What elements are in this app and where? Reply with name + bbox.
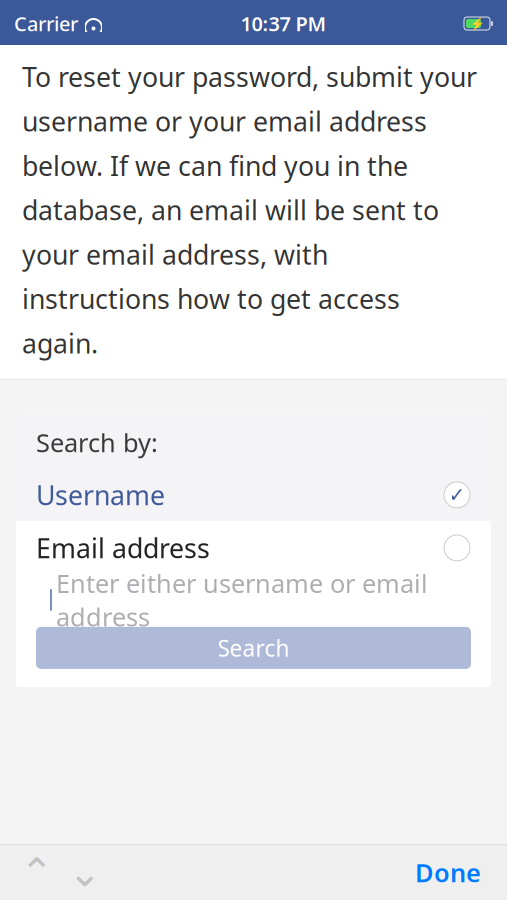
button[interactable]: Username xyxy=(16,469,491,521)
staticText: 10:37 PM xyxy=(240,10,326,37)
staticText: Done xyxy=(415,856,481,889)
button[interactable]: Search xyxy=(36,627,471,669)
button[interactable]: Next field xyxy=(68,855,102,889)
staticText: Username xyxy=(36,477,165,513)
staticText: ✓ xyxy=(448,483,465,506)
staticText: Email address xyxy=(36,530,210,566)
button[interactable]: Email address xyxy=(16,521,491,575)
staticText: Carrier xyxy=(14,10,78,37)
button[interactable]: Done xyxy=(409,850,487,895)
staticText: ⌃ xyxy=(20,850,54,895)
staticText: Search xyxy=(217,633,289,663)
staticText: ⚡ xyxy=(469,17,484,30)
staticText: Enter either username or email address xyxy=(56,566,428,633)
button[interactable]: Previous field xyxy=(20,855,54,889)
staticText: To reset your password, submit your user… xyxy=(22,59,477,361)
staticText: Search by: xyxy=(36,426,158,459)
staticText: ⌄ xyxy=(68,850,102,895)
